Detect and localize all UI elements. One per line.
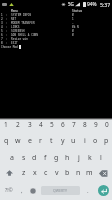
button[interactable]: c [40,166,51,180]
staticText: 6 [61,120,65,129]
button[interactable]: Backspace [95,166,112,180]
button[interactable]: n [73,166,84,180]
button[interactable]: p [101,134,112,147]
button[interactable]: a [6,151,18,164]
staticText: q [4,136,9,146]
staticText: 5G [68,1,74,7]
staticText: QWERTY [53,188,68,193]
button[interactable]: 2 [12,119,24,130]
button[interactable]: Shift [0,166,18,180]
staticText: 3 [28,120,32,129]
button[interactable]: 4 [35,119,46,130]
button[interactable]: QWERTY [41,186,80,195]
button[interactable]: 8 [79,119,90,130]
staticText: 4 [39,120,43,129]
staticText: 0 [105,120,109,129]
button[interactable]: o [90,134,101,147]
button[interactable]: 3 [24,119,35,130]
staticText: 0k N [72,25,79,29]
staticText: . [87,187,89,195]
button[interactable]: r [35,134,46,147]
staticText: 5:37 [100,1,111,8]
button[interactable]: y [57,134,68,147]
staticText: 2 [16,120,20,129]
staticText: Status [72,9,83,13]
button[interactable]: w [12,134,24,147]
staticText: w [15,136,21,146]
staticText: 94% [87,1,97,8]
staticText: x [33,168,37,178]
staticText: 1 [72,17,74,21]
button[interactable]: 1 [0,119,12,130]
staticText: 1 [4,120,8,129]
button[interactable]: ?!© [0,181,17,200]
staticText: p [104,136,109,146]
staticText: 1 : SYSTEM INFOS [1,13,32,17]
staticText: - [72,21,74,25]
staticText: r [39,136,42,146]
staticText: d [32,153,37,163]
button[interactable]: i [79,134,90,147]
staticText: u [71,136,76,146]
button[interactable]: j [73,151,84,164]
staticText: f [44,153,47,163]
staticText: g [54,153,59,163]
staticText: 5 : SCREENSH [1,29,25,33]
staticText: l [100,153,102,163]
button[interactable]: f [40,151,51,164]
staticText: , [21,187,23,195]
button[interactable]: 0 [101,119,112,130]
button[interactable]: q [0,134,12,147]
staticText: m [86,168,93,178]
button[interactable]: e [24,134,35,147]
staticText: 7 : Resize win [1,37,28,41]
staticText: 8 [83,120,87,129]
staticText: 5 [50,120,54,129]
staticText: b [65,168,70,178]
staticText: h [65,153,70,163]
button[interactable]: 7 [68,119,79,130]
staticText: 4 : LINKS [1,25,20,29]
button[interactable]: 5 [46,119,57,130]
staticText: 8 : EXIT [1,41,18,45]
button[interactable]: 6 [57,119,68,130]
staticText: Menu [1,9,18,13]
staticText: 0 [72,29,74,33]
staticText: k [88,153,92,163]
staticText: 0 [72,13,74,17]
staticText: 0 [72,33,74,37]
button[interactable]: Change keyboard language [27,181,39,200]
button[interactable]: k [84,151,95,164]
staticText: v [55,168,59,178]
staticText: s [22,153,26,163]
button[interactable]: t [46,134,57,147]
staticText: z [22,168,26,178]
staticText: a [10,153,14,163]
staticText: ?!© [5,187,13,194]
button[interactable]: v [51,166,62,180]
staticText: j [78,153,80,163]
staticText: 6 : ADB SHELL & CONN [1,33,38,37]
staticText: e [28,136,32,146]
button[interactable]: g [51,151,62,164]
button[interactable]: , [17,181,27,200]
button[interactable]: z [18,166,29,180]
button[interactable]: b [62,166,73,180]
button[interactable]: s [18,151,29,164]
staticText: 3 : MODEM TRANSFER [1,21,35,25]
button[interactable]: x [29,166,40,180]
staticText: o [93,136,98,146]
staticText: 2 : NET [1,17,17,21]
button[interactable]: 9 [90,119,101,130]
staticText: c [44,168,48,178]
staticText: 9 [94,120,98,129]
button[interactable]: Enter [94,181,112,200]
button[interactable]: h [62,151,73,164]
staticText: 7 [72,120,76,129]
button[interactable]: m [84,166,95,180]
button[interactable]: l [95,151,106,164]
button[interactable]: u [68,134,79,147]
staticText: t [50,136,53,146]
button[interactable]: d [29,151,40,164]
